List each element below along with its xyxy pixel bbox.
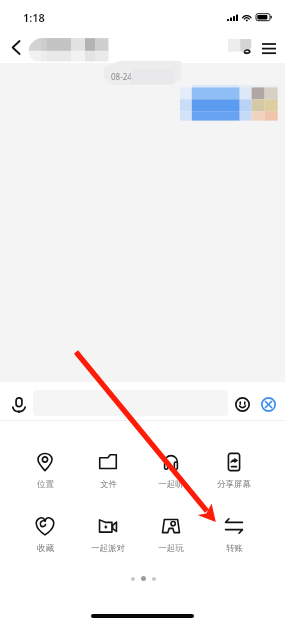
staticText: 一起听 bbox=[158, 479, 184, 490]
staticText: 08-24 bbox=[111, 71, 132, 82]
staticText: 分享屏幕 bbox=[217, 479, 251, 490]
staticText: 1:18 bbox=[23, 10, 45, 25]
button[interactable]: 一起玩 bbox=[145, 513, 197, 554]
button[interactable]: Close attachment panel bbox=[257, 393, 280, 416]
button[interactable] bbox=[27, 36, 111, 63]
button[interactable]: 文件 bbox=[82, 449, 134, 490]
staticText: 一起派对 bbox=[91, 543, 125, 554]
staticText: 收藏 bbox=[37, 543, 54, 554]
button[interactable]: 一起听 bbox=[145, 449, 197, 490]
button[interactable]: 一起派对 bbox=[82, 513, 134, 554]
button[interactable]: Menu bbox=[256, 34, 283, 60]
staticText: 一起玩 bbox=[158, 543, 184, 554]
staticText: 转账 bbox=[226, 543, 243, 554]
button[interactable] bbox=[33, 390, 228, 416]
staticText: 位置 bbox=[37, 479, 54, 490]
button[interactable]: 收藏 bbox=[19, 513, 71, 554]
staticText: 文件 bbox=[100, 479, 117, 490]
button[interactable]: 位置 bbox=[19, 449, 71, 490]
button[interactable]: Voice input bbox=[5, 391, 32, 418]
button[interactable]: 分享屏幕 bbox=[208, 449, 260, 490]
button[interactable]: Back bbox=[2, 32, 30, 63]
button[interactable]: 转账 bbox=[208, 513, 260, 554]
button[interactable]: Emoji bbox=[231, 393, 254, 416]
button[interactable]: Contact details bbox=[226, 36, 254, 58]
